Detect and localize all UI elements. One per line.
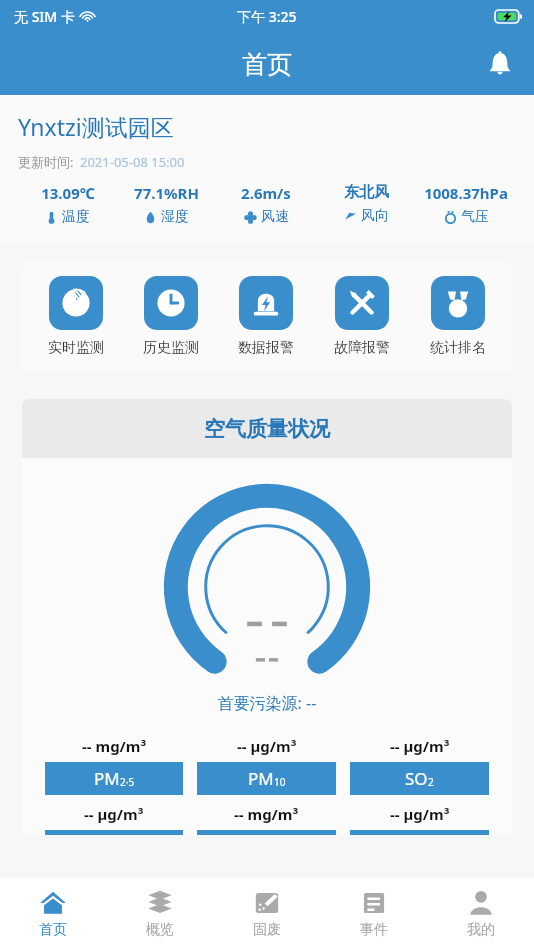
- button[interactable]: 统计排名: [410, 276, 506, 357]
- staticText: 13.09℃: [41, 183, 95, 203]
- button[interactable]: 故障报警: [314, 276, 410, 357]
- staticText: 数据报警: [238, 339, 294, 357]
- staticText: 2·5: [120, 775, 135, 789]
- staticText: 东北风: [344, 183, 389, 202]
- button[interactable]: 13.09℃: [18, 183, 117, 226]
- staticText: -- µg/m³: [237, 736, 297, 756]
- staticText: 首要污染源: --: [22, 692, 512, 714]
- staticText: 更新时间:: [18, 153, 74, 171]
- staticText: 统计排名: [430, 339, 486, 357]
- staticText: 我的: [467, 921, 495, 939]
- staticText: 2.6m/s: [241, 183, 291, 203]
- staticText: 风向: [361, 207, 389, 225]
- button[interactable]: 固废: [213, 878, 320, 950]
- staticText: 2021-05-08 15:00: [80, 153, 185, 171]
- button[interactable]: 历史监测: [123, 276, 218, 357]
- staticText: -- µg/m³: [390, 804, 450, 824]
- staticText: Ynxtzi测试园区: [18, 111, 174, 142]
- staticText: 事件: [360, 921, 388, 939]
- staticText: SO: [405, 767, 428, 790]
- staticText: 1008.37hPa: [424, 183, 508, 203]
- button[interactable]: 我的: [427, 878, 534, 950]
- staticText: 实时监测: [48, 339, 104, 357]
- staticText: 首页: [39, 921, 67, 939]
- button[interactable]: 1008.37hPa: [416, 183, 516, 226]
- staticText: 10: [274, 775, 286, 789]
- staticText: -- mg/m³: [234, 804, 299, 824]
- button[interactable]: Notifications: [476, 40, 524, 88]
- staticText: 2: [428, 775, 434, 789]
- button[interactable]: 数据报警: [218, 276, 314, 357]
- button[interactable]: PM: [45, 762, 183, 795]
- staticText: 气压: [461, 208, 489, 226]
- staticText: 下午 3:25: [237, 7, 297, 26]
- button[interactable]: 概览: [106, 878, 213, 950]
- staticText: 空气质量状况: [204, 416, 330, 442]
- staticText: 温度: [62, 208, 90, 226]
- staticText: 湿度: [161, 208, 189, 226]
- staticText: 首页: [242, 49, 292, 80]
- staticText: PM: [248, 767, 274, 790]
- staticText: -- mg/m³: [82, 736, 147, 756]
- staticText: 无 SIM 卡: [14, 7, 75, 26]
- staticText: 固废: [253, 921, 281, 939]
- button[interactable]: 首页: [0, 878, 106, 950]
- staticText: -- µg/m³: [390, 736, 450, 756]
- staticText: 历史监测: [143, 339, 199, 357]
- staticText: -- µg/m³: [84, 804, 144, 824]
- staticText: 故障报警: [334, 339, 390, 357]
- button[interactable]: 77.1%RH: [117, 183, 216, 226]
- button[interactable]: 东北风: [316, 183, 416, 225]
- button[interactable]: 2.6m/s: [216, 183, 316, 226]
- staticText: 概览: [146, 921, 174, 939]
- button[interactable]: PM: [197, 762, 336, 795]
- staticText: 77.1%RH: [134, 183, 199, 203]
- staticText: 风速: [261, 208, 289, 226]
- staticText: PM: [94, 767, 120, 790]
- button[interactable]: 实时监测: [28, 276, 123, 357]
- button[interactable]: SO: [350, 762, 489, 795]
- button[interactable]: 事件: [320, 878, 427, 950]
